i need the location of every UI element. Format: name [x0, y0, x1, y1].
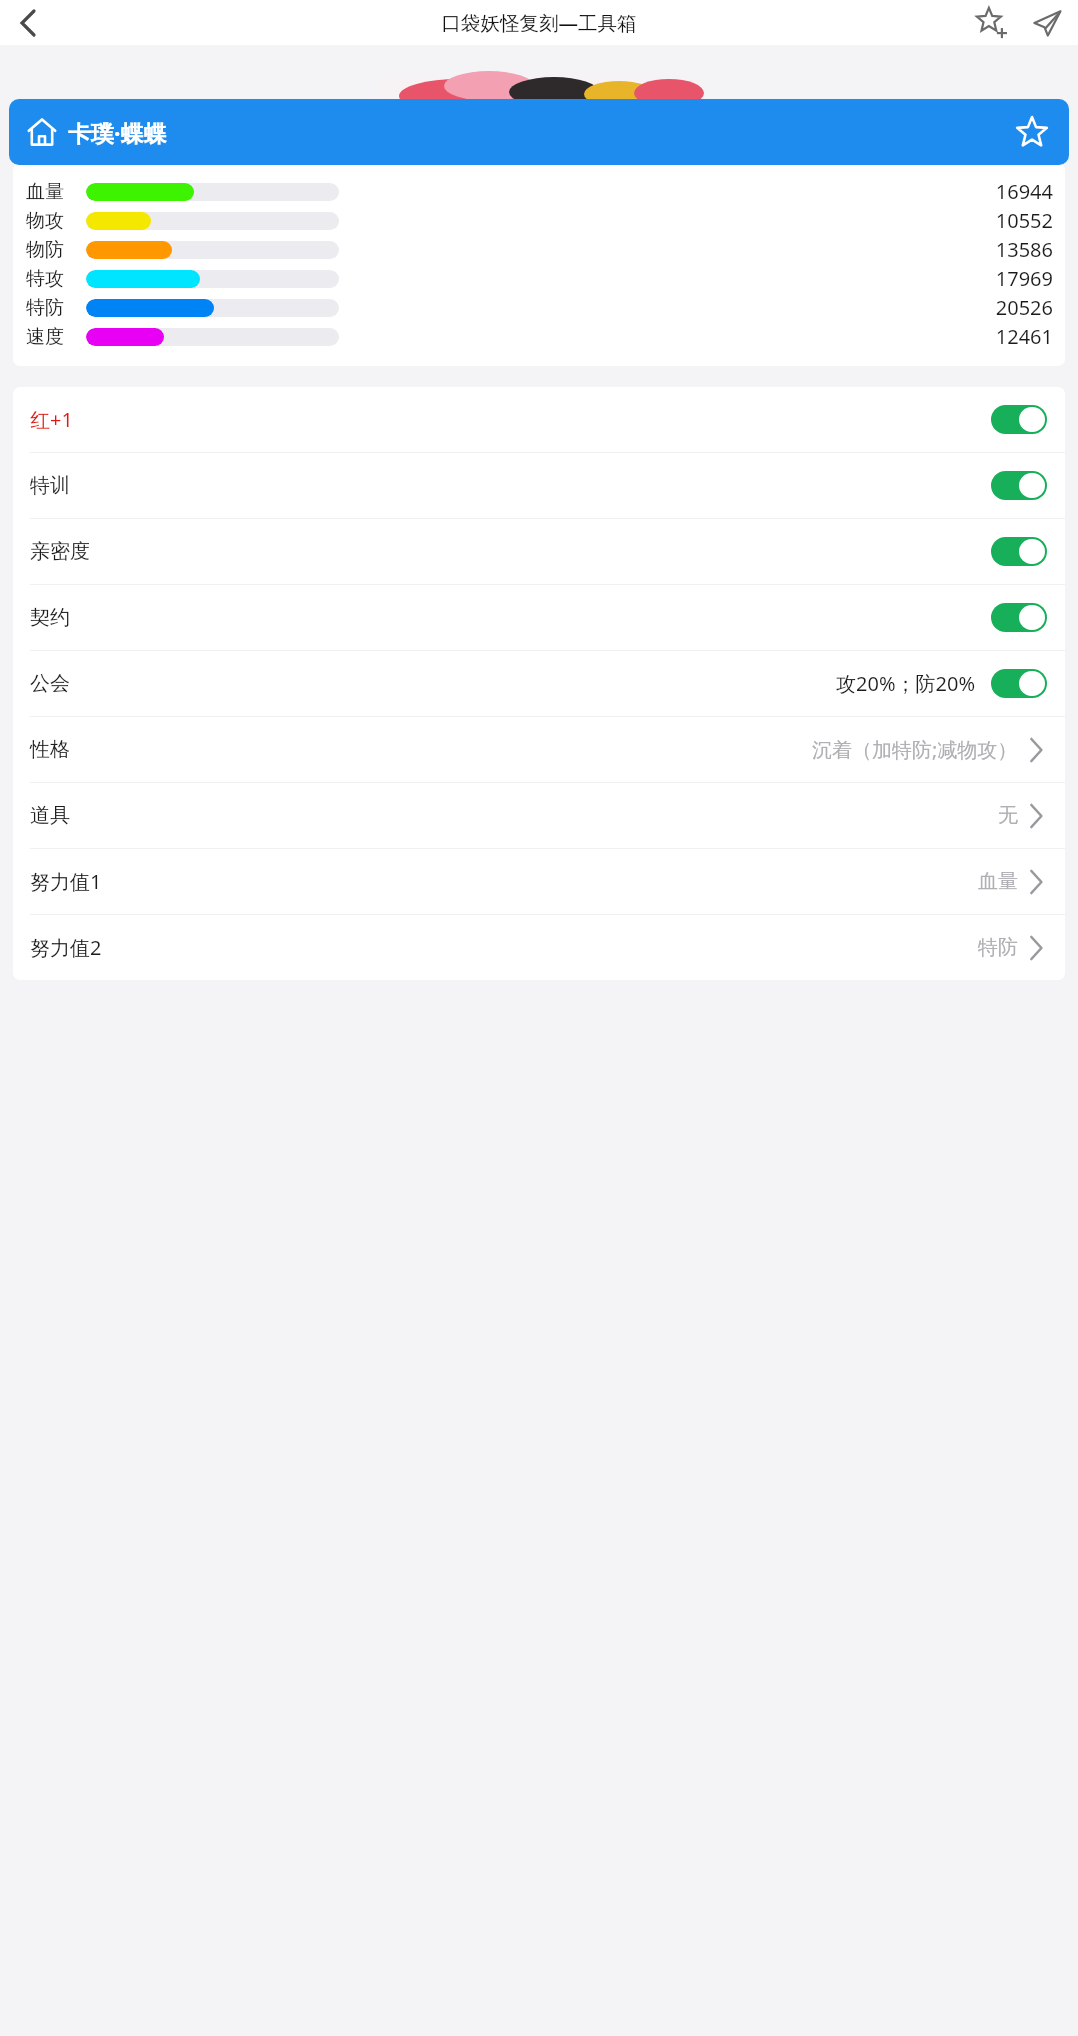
- staticText: 12461: [995, 323, 1053, 350]
- button[interactable]: 努力值2: [13, 915, 1065, 980]
- button[interactable]: 努力值1: [13, 849, 1065, 914]
- staticText: 口袋妖怪复刻—工具箱: [441, 9, 637, 36]
- button[interactable]: Favourite: [1015, 115, 1049, 149]
- button[interactable]: Back: [8, 3, 48, 43]
- staticText: 特防: [26, 296, 86, 320]
- staticText: 血量: [26, 180, 86, 204]
- staticText: 公会: [30, 671, 70, 696]
- button[interactable]: Add to favourites: [970, 2, 1012, 44]
- staticText: 17969: [995, 265, 1053, 292]
- staticText: 道具: [30, 803, 70, 828]
- staticText: 物防: [26, 238, 86, 262]
- button[interactable]: 契约: [13, 585, 1065, 650]
- button[interactable]: Toggle 契约: [991, 603, 1047, 632]
- staticText: 性格: [30, 737, 70, 762]
- staticText: 努力值2: [30, 934, 102, 961]
- button[interactable]: 公会: [13, 651, 1065, 716]
- button[interactable]: 卡璞·蝶蝶: [9, 99, 1069, 165]
- staticText: 10552: [995, 207, 1053, 234]
- staticText: 特攻: [26, 267, 86, 291]
- staticText: 特防: [978, 935, 1018, 960]
- staticText: 卡璞·蝶蝶: [68, 117, 167, 148]
- button[interactable]: 性格: [13, 717, 1065, 782]
- staticText: 亲密度: [30, 539, 90, 564]
- staticText: 13586: [995, 236, 1053, 263]
- staticText: 物攻: [26, 209, 86, 233]
- staticText: 20526: [995, 294, 1053, 321]
- staticText: 沉着（加特防;减物攻）: [812, 736, 1018, 763]
- button[interactable]: 亲密度: [13, 519, 1065, 584]
- staticText: 血量: [978, 869, 1018, 894]
- button[interactable]: 特训: [13, 453, 1065, 518]
- button[interactable]: Share: [1026, 2, 1068, 44]
- staticText: 速度: [26, 325, 86, 349]
- staticText: 红+1: [30, 406, 73, 433]
- button[interactable]: Toggle 公会: [991, 669, 1047, 698]
- staticText: 无: [998, 803, 1018, 828]
- button[interactable]: Toggle 红+1: [991, 405, 1047, 434]
- staticText: 攻20%；防20%: [836, 670, 975, 697]
- button[interactable]: 道具: [13, 783, 1065, 848]
- button[interactable]: 红+1: [13, 387, 1065, 452]
- button[interactable]: Toggle 亲密度: [991, 537, 1047, 566]
- staticText: 努力值1: [30, 868, 102, 895]
- staticText: 16944: [995, 178, 1053, 205]
- button[interactable]: Toggle 特训: [991, 471, 1047, 500]
- staticText: 契约: [30, 605, 70, 630]
- staticText: 特训: [30, 473, 70, 498]
